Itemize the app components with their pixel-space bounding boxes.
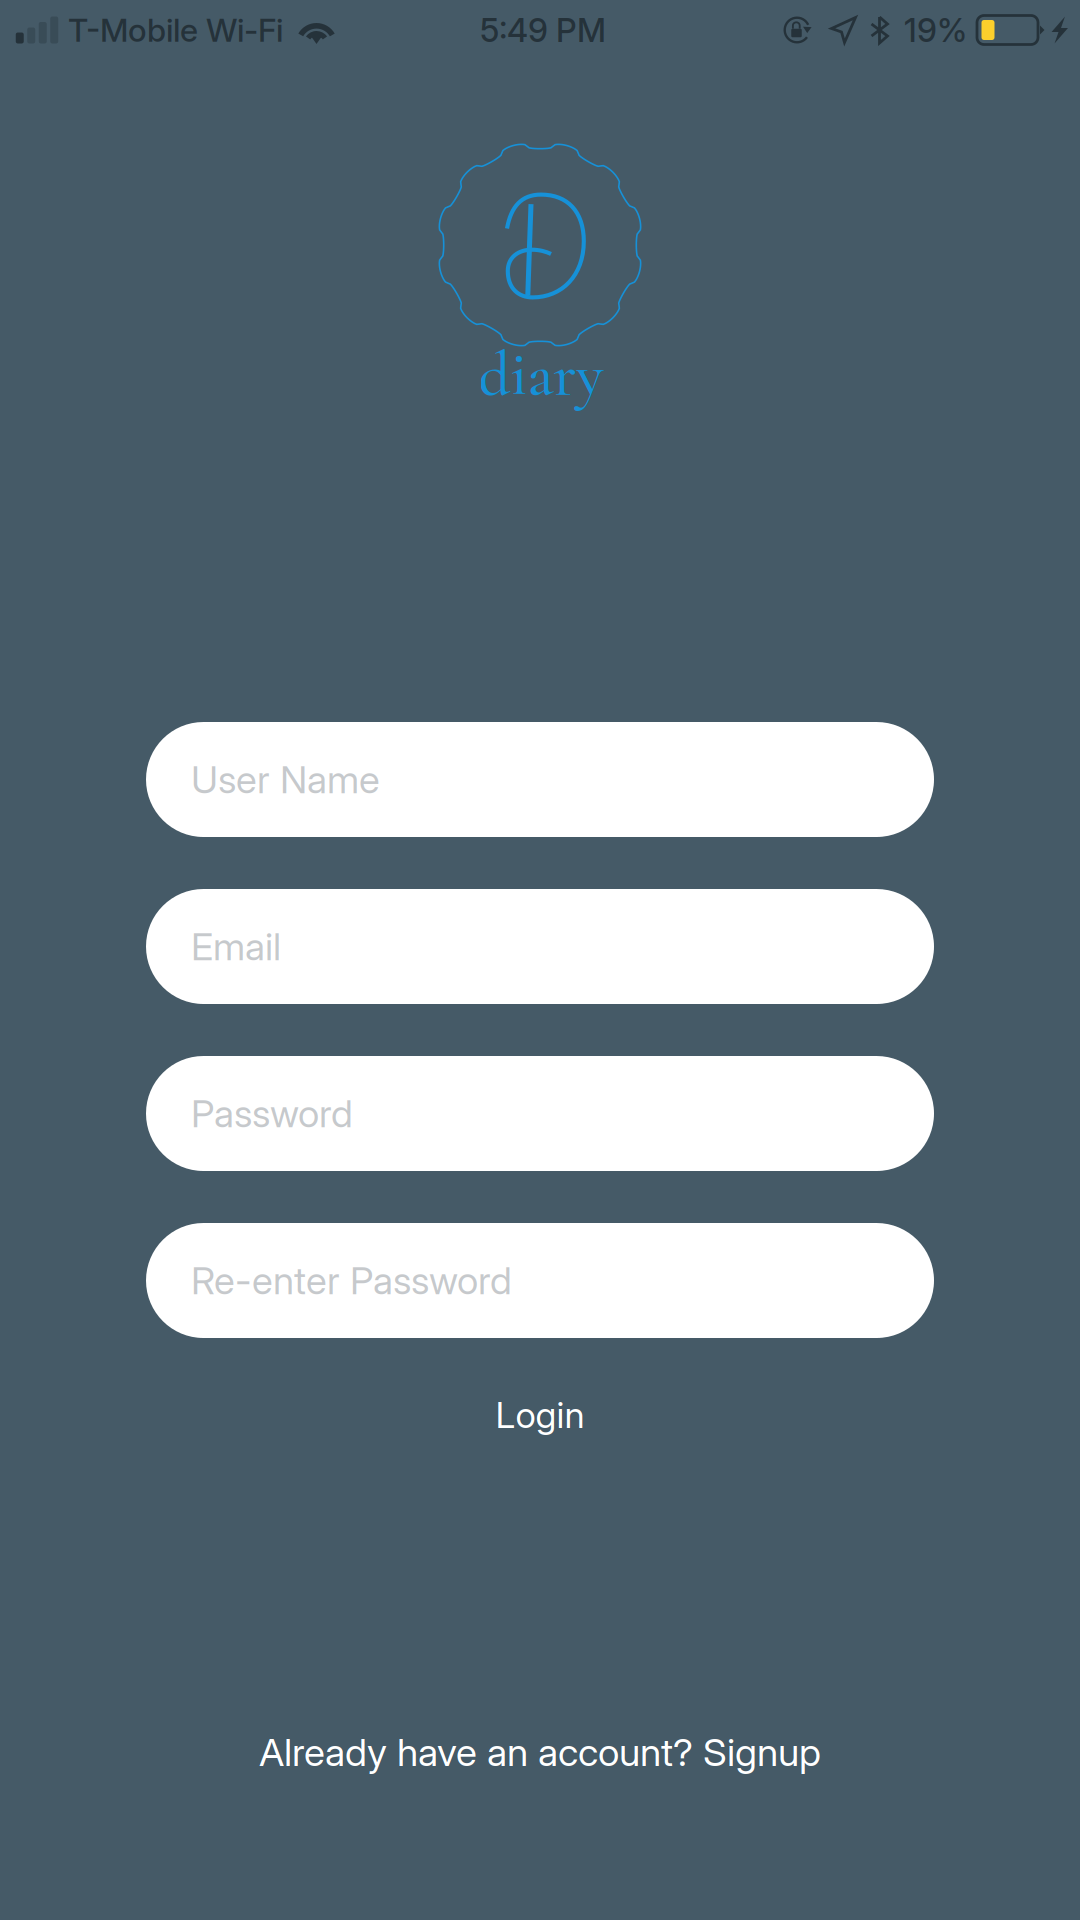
button[interactable]: Re-enter Password [146,1223,934,1338]
staticText: Re-enter Password [191,1257,512,1303]
button[interactable]: Password [146,1056,934,1171]
staticText: diary [478,336,603,412]
staticText: User Name [191,756,380,802]
button[interactable]: Login [439,1369,640,1461]
staticText: 5:49 PM [480,10,606,50]
staticText: Email [191,923,281,969]
button[interactable]: Email [146,889,934,1004]
button[interactable]: Already have an account? Signup [227,1709,853,1795]
button[interactable]: User Name [146,722,934,837]
staticText: Login [495,1393,584,1437]
staticText: Already have an account? Signup [259,1729,821,1775]
staticText: 19% [904,10,967,50]
staticText: Password [191,1090,353,1136]
staticText: T-Mobile Wi-Fi [68,11,283,49]
